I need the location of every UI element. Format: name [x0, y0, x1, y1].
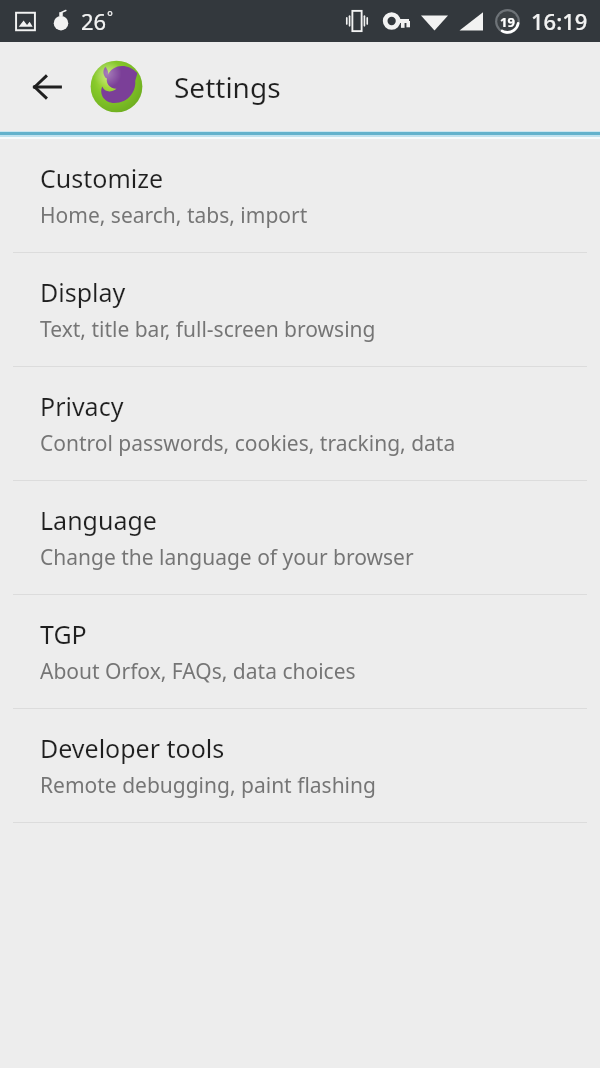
staticText: 19	[500, 13, 515, 31]
staticText: Privacy	[40, 389, 124, 423]
staticText: Control passwords, cookies, tracking, da…	[40, 429, 456, 458]
staticText: About Orfox, FAQs, data choices	[40, 657, 356, 686]
staticText: °	[107, 7, 113, 26]
staticText: Display	[40, 275, 126, 309]
button[interactable]: Display	[0, 253, 600, 366]
staticText: Developer tools	[40, 731, 225, 765]
button[interactable]: Back	[18, 58, 76, 116]
staticText: 16:19	[531, 6, 588, 36]
staticText: Customize	[40, 161, 164, 195]
staticText: Home, search, tabs, import	[40, 201, 308, 230]
staticText: 26	[81, 6, 107, 36]
staticText: Remote debugging, paint flashing	[40, 771, 376, 800]
staticText: Change the language of your browser	[40, 543, 414, 572]
button[interactable]: TGP	[0, 595, 600, 708]
button[interactable]: Customize	[0, 139, 600, 252]
staticText: Text, title bar, full-screen browsing	[40, 315, 376, 344]
staticText: Language	[40, 503, 157, 537]
staticText: Settings	[174, 68, 281, 106]
button[interactable]: Language	[0, 481, 600, 594]
staticText: TGP	[40, 617, 87, 651]
button[interactable]: Privacy	[0, 367, 600, 480]
button[interactable]: Developer tools	[0, 709, 600, 822]
